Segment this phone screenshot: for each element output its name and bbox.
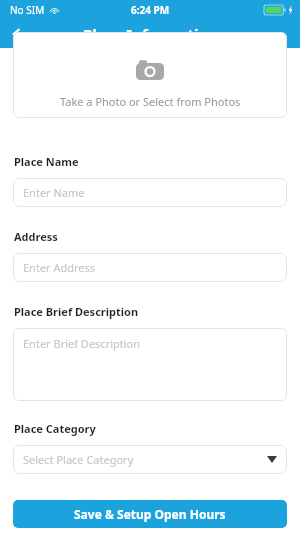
- staticText: Place Category: [14, 421, 96, 436]
- button[interactable]: Enter Address: [13, 253, 287, 282]
- button[interactable]: Take a Photo or Select from Photos: [13, 32, 287, 118]
- button[interactable]: Enter Brief Description: [13, 328, 287, 401]
- staticText: Enter Address: [23, 260, 96, 275]
- staticText: 6:24 PM: [131, 3, 170, 17]
- button[interactable]: Enter Name: [13, 178, 287, 207]
- staticText: Place Information: [83, 24, 218, 44]
- staticText: Enter Name: [23, 185, 85, 200]
- button[interactable]: Back: [0, 20, 34, 48]
- staticText: Place Name: [14, 154, 79, 169]
- staticText: Enter Brief Description: [23, 336, 141, 351]
- staticText: No SIM: [10, 3, 45, 17]
- button[interactable]: Select Place Category: [13, 445, 287, 474]
- button[interactable]: Save & Setup Open Hours: [13, 500, 287, 528]
- staticText: Place Brief Description: [14, 304, 139, 319]
- staticText: Save & Setup Open Hours: [74, 506, 226, 522]
- staticText: Select Place Category: [23, 452, 134, 467]
- staticText: Address: [14, 229, 58, 244]
- staticText: Take a Photo or Select from Photos: [60, 94, 241, 109]
